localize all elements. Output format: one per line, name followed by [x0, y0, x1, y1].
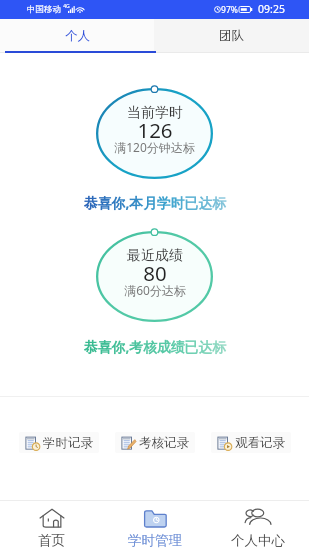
button[interactable]: 首页: [0, 501, 103, 550]
staticText: 中国移动: [27, 4, 61, 15]
staticText: 首页: [38, 532, 65, 549]
button[interactable]: 团队: [154, 19, 309, 52]
staticText: 学时记录: [43, 435, 93, 451]
staticText: 80: [143, 259, 167, 287]
button[interactable]: 考核记录: [115, 432, 195, 453]
staticText: 恭喜你,考核成绩已达标: [84, 337, 226, 356]
staticText: 个人: [65, 28, 90, 44]
staticText: 观看记录: [235, 435, 285, 451]
staticText: 4G: [63, 3, 70, 10]
staticText: 09:25: [258, 2, 285, 16]
staticText: 个人中心: [231, 532, 285, 549]
staticText: 团队: [219, 28, 244, 44]
button[interactable]: 学时管理: [103, 501, 206, 550]
button[interactable]: 个人中心: [206, 501, 309, 550]
staticText: 满60分达标: [124, 282, 186, 298]
staticText: 当前学时: [127, 104, 183, 122]
staticText: 最近成绩: [127, 247, 183, 265]
button[interactable]: 观看记录: [211, 432, 291, 453]
staticText: 满120分钟达标: [114, 139, 195, 155]
staticText: 126: [137, 116, 173, 144]
staticText: 学时管理: [128, 532, 182, 549]
staticText: 恭喜你,本月学时已达标: [84, 193, 226, 212]
staticText: 考核记录: [139, 435, 189, 451]
button[interactable]: 学时记录: [19, 432, 99, 453]
button[interactable]: 个人: [0, 19, 154, 52]
staticText: 97%: [221, 4, 238, 16]
